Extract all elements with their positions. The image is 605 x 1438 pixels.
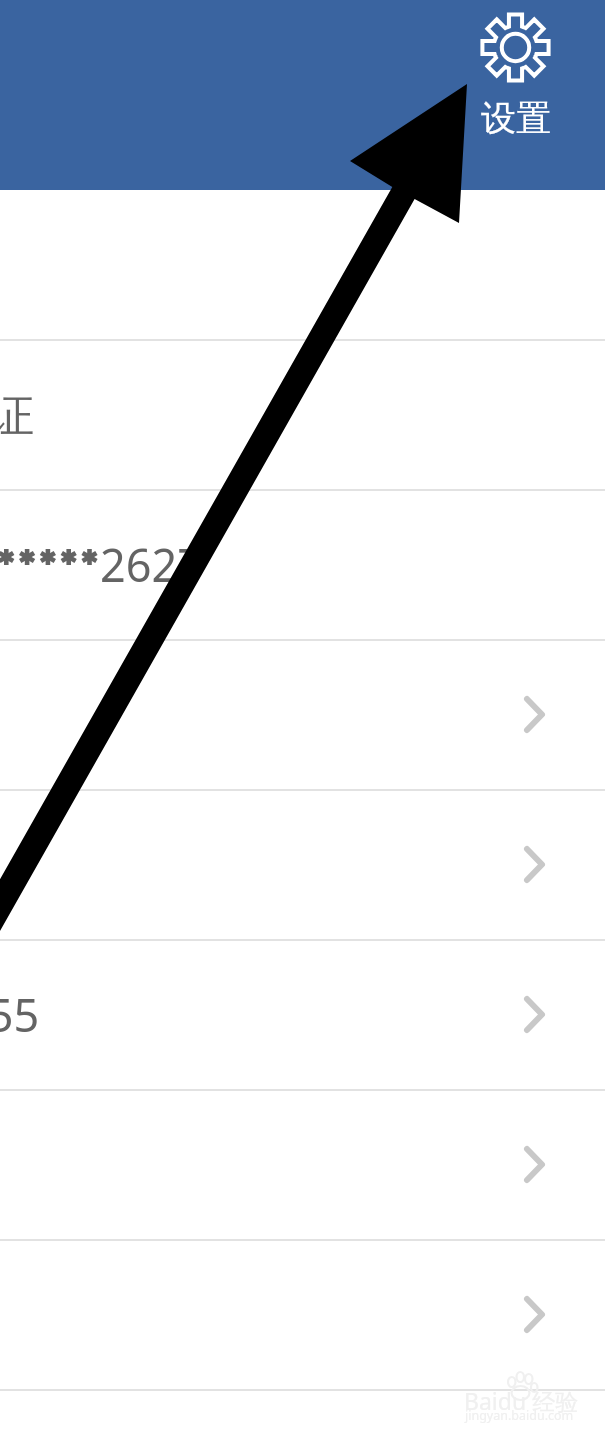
staticText: Baidu 经验 xyxy=(464,1385,579,1416)
button[interactable] xyxy=(0,1089,605,1239)
staticText: 2627 xyxy=(100,534,203,595)
button[interactable] xyxy=(0,1239,605,1389)
button[interactable] xyxy=(0,789,605,939)
button[interactable] xyxy=(0,489,605,639)
button[interactable] xyxy=(0,939,605,1089)
staticText: jingyan.baidu.com xyxy=(465,1407,574,1424)
button[interactable] xyxy=(0,639,605,789)
button[interactable] xyxy=(0,339,605,489)
button[interactable]: 设置 xyxy=(469,3,562,148)
other: 设置 xyxy=(479,11,552,84)
staticText: 13888888855 xyxy=(0,984,40,1045)
staticText: 设置 xyxy=(481,96,551,140)
staticText: 身份证 xyxy=(0,388,34,445)
